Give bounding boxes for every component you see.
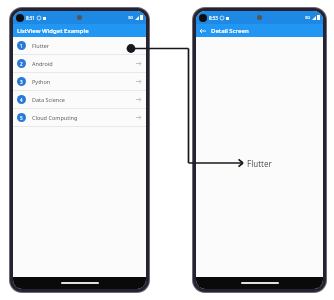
button[interactable]: 1 xyxy=(13,37,146,54)
staticText: 3 xyxy=(20,79,23,85)
staticText: Android xyxy=(32,60,53,67)
other: Open Cloud Computing xyxy=(136,115,141,120)
button[interactable]: Back xyxy=(200,28,206,34)
button[interactable]: 4 xyxy=(13,91,146,108)
button[interactable]: 5 xyxy=(13,109,146,126)
other: Open Android xyxy=(136,61,141,66)
other: Open Python xyxy=(136,79,141,84)
staticText: Flutter xyxy=(32,42,50,49)
staticText: Python xyxy=(32,78,51,85)
button[interactable]: 2 xyxy=(13,55,146,72)
staticText: 8:53 xyxy=(209,15,218,21)
staticText: ListView Widget Example xyxy=(17,27,89,35)
staticText: 4 xyxy=(20,97,23,103)
staticText: Cloud Computing xyxy=(32,114,78,121)
staticText: Flutter xyxy=(247,158,272,169)
staticText: 2 xyxy=(20,61,23,67)
staticText: 3G xyxy=(128,15,134,20)
staticText: 5 xyxy=(20,115,23,121)
staticText: 8:51 xyxy=(26,15,35,21)
staticText: Data Science xyxy=(32,96,65,103)
button[interactable]: 3 xyxy=(13,73,146,90)
staticText: Detail Screen xyxy=(211,27,249,35)
other: Open Data Science xyxy=(136,97,141,102)
staticText: 3G xyxy=(305,15,311,20)
staticText: 1 xyxy=(20,43,23,49)
